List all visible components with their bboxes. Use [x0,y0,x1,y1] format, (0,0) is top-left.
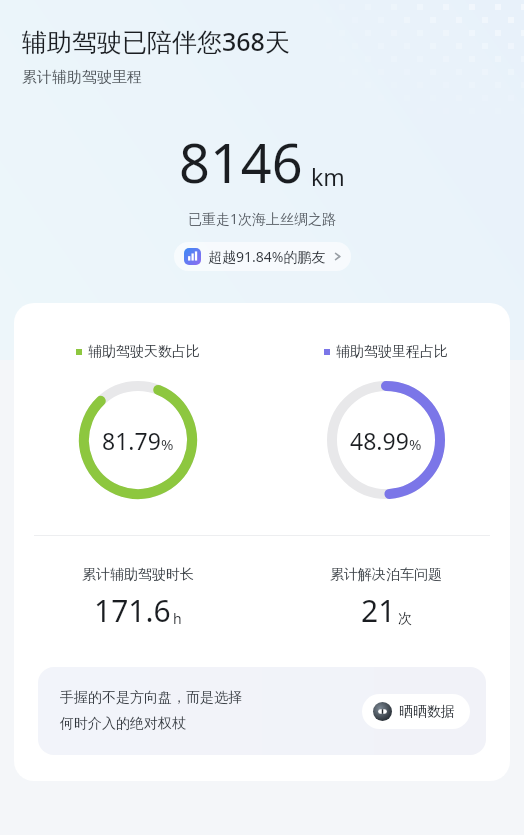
staticText: 81.79 [102,425,161,456]
staticText: 21 [361,590,396,631]
staticText: 次 [398,610,412,628]
staticText: 累计辅助驾驶里程 [22,68,142,87]
button[interactable]: 晒晒数据 [362,694,470,729]
button[interactable]: 超越91.84%的鹏友 [174,242,351,271]
staticText: km [311,161,345,192]
staticText: h [173,609,182,628]
staticText: 手握的不是方向盘，而是选择 何时介入的绝对权杖 [60,689,362,733]
staticText: 辅助驾驶里程占比 [336,343,448,361]
staticText: 已重走1次海上丝绸之路 [0,209,524,228]
staticText: 171.6 [94,590,171,631]
staticText: % [161,434,174,454]
staticText: % [409,434,422,454]
staticText: 48.99 [350,425,409,456]
staticText: 超越91.84%的鹏友 [208,247,326,266]
staticText: 晒晒数据 [399,703,455,721]
staticText: 8146 [179,125,303,199]
staticText: 辅助驾驶已陪伴您368天 [22,24,290,58]
staticText: 累计辅助驾驶时长 [82,566,194,584]
staticText: 累计解决泊车问题 [330,566,442,584]
staticText: 辅助驾驶天数占比 [88,343,200,361]
